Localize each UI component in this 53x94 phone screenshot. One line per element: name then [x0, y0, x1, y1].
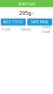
staticText: Values: [20, 26, 31, 32]
staticText: v: [32, 10, 34, 16]
staticText: ADD FOOD: [3, 20, 23, 24]
staticText: Food: [2, 26, 10, 32]
staticText: Daily Goal: [42, 24, 51, 34]
button[interactable]: ADD FOOD: [1, 18, 26, 25]
staticText: 295g: [19, 9, 31, 17]
button[interactable]: SAVE MEAL: [27, 18, 52, 25]
staticText: Add Food: [18, 1, 34, 6]
staticText: SAVE MEAL: [31, 20, 49, 24]
